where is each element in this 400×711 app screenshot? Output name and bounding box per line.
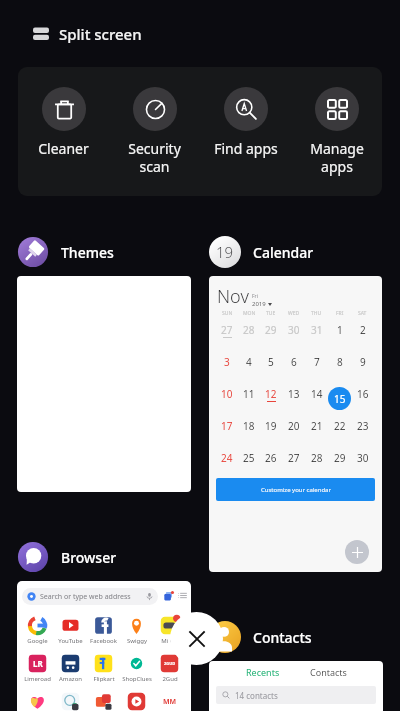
button[interactable]: LR <box>21 654 54 683</box>
button[interactable]: 15 <box>328 387 351 410</box>
button[interactable]: 28 <box>311 451 323 465</box>
button[interactable]: Contacts <box>302 666 355 678</box>
button[interactable]: Security scan <box>109 87 200 176</box>
button[interactable]: Amazon <box>54 654 87 683</box>
staticText: Flipkart <box>93 675 115 683</box>
staticText: Recents <box>246 666 280 678</box>
button[interactable]: Add event <box>345 540 369 564</box>
button[interactable]: Customize your calendar <box>216 478 375 501</box>
button[interactable]: 30 <box>288 323 300 337</box>
staticText: Search or type web address <box>40 592 131 602</box>
button[interactable]: Helo <box>87 692 120 711</box>
button[interactable]: Mi Ga <box>153 616 186 645</box>
button[interactable]: Find apps <box>200 87 291 158</box>
button[interactable]: Recents <box>238 666 288 678</box>
button[interactable]: 30 <box>357 451 369 465</box>
button[interactable]: 14 contacts <box>216 686 376 704</box>
staticText: Manage apps <box>310 139 364 176</box>
button[interactable]: 2GUD <box>153 654 186 683</box>
staticText: Security scan <box>128 139 181 176</box>
button[interactable]: 3 <box>224 355 230 369</box>
button[interactable]: 1 <box>337 323 343 337</box>
staticText: SAT <box>358 310 367 317</box>
button[interactable]: Split screen <box>33 24 142 44</box>
button[interactable]: Manage apps <box>291 87 382 176</box>
staticText: Amazon <box>59 675 82 683</box>
button[interactable]: Search or type web address <box>22 588 158 605</box>
button[interactable]: Likee <box>21 692 54 711</box>
button[interactable]: Google <box>21 616 54 645</box>
button[interactable]: 31 <box>311 323 323 337</box>
button[interactable]: 20 <box>288 419 300 433</box>
button[interactable]: 5 <box>268 355 274 369</box>
other: Voice search <box>145 592 154 601</box>
staticText: Contacts <box>253 628 312 647</box>
button[interactable]: 24 <box>221 451 233 465</box>
staticText: FRI <box>336 310 344 317</box>
staticText: SUN <box>222 310 233 317</box>
button[interactable]: Menu <box>178 591 187 602</box>
staticText: WED <box>288 310 300 317</box>
staticText: YouTube <box>58 637 83 645</box>
button[interactable]: 19 <box>265 419 277 433</box>
staticText: MM <box>163 697 177 707</box>
staticText: 19 <box>216 242 234 262</box>
staticText: Find apps <box>214 139 278 158</box>
button[interactable]: 12 <box>265 387 277 401</box>
button[interactable]: Facebook <box>87 616 120 645</box>
button[interactable]: ShopClues <box>120 654 153 683</box>
button[interactable]: 4 <box>246 355 252 369</box>
staticText: Split screen <box>59 24 142 44</box>
button[interactable]: Themes <box>17 236 114 268</box>
button[interactable]: Close <box>170 612 223 665</box>
button[interactable]: 13 <box>288 387 300 401</box>
staticText: LR <box>33 658 43 669</box>
staticText: 2019 <box>252 300 266 308</box>
button[interactable]: Contacts <box>209 621 312 653</box>
button[interactable]: 8 <box>337 355 343 369</box>
button[interactable]: 10 <box>221 387 233 401</box>
button[interactable]: MM <box>153 692 186 711</box>
button[interactable]: 22 <box>334 419 346 433</box>
button[interactable]: 19 <box>209 236 314 268</box>
button[interactable]: 28 <box>243 323 255 337</box>
staticText: Contacts <box>310 666 347 678</box>
button[interactable]: 17 <box>221 419 233 433</box>
staticText: Google <box>27 637 48 645</box>
staticText: Swiggy <box>127 637 147 645</box>
button[interactable]: 11 <box>243 387 255 401</box>
button[interactable]: Tabs <box>163 591 174 602</box>
button[interactable]: 26 <box>265 451 277 465</box>
button[interactable]: 9 <box>360 355 366 369</box>
staticText: TUE <box>266 310 276 317</box>
staticText: 2Gud <box>162 675 178 683</box>
button[interactable]: 29 <box>334 451 346 465</box>
button[interactable]: 27 <box>221 323 233 337</box>
button[interactable]: 14 <box>311 387 323 401</box>
button[interactable]: 2 <box>360 323 366 337</box>
button[interactable]: 16 <box>357 387 369 401</box>
button[interactable] <box>17 276 191 492</box>
button[interactable]: 7 <box>314 355 320 369</box>
staticText: 15 <box>334 392 346 406</box>
button[interactable]: Flipkart <box>87 654 120 683</box>
button[interactable]: 18 <box>243 419 255 433</box>
button[interactable]: 25 <box>243 451 255 465</box>
staticText: Mi Ga <box>161 637 178 645</box>
button[interactable]: 29 <box>265 323 277 337</box>
button[interactable]: Swiggy <box>120 616 153 645</box>
staticText: 14 contacts <box>235 690 278 701</box>
button[interactable]: 27 <box>288 451 300 465</box>
button[interactable]: Bigo <box>54 692 87 711</box>
staticText: MON <box>243 310 256 317</box>
staticText: 2GUD <box>164 661 176 666</box>
button[interactable]: Vigo <box>120 692 153 711</box>
staticText: Limeroad <box>24 675 51 683</box>
button[interactable]: YouTube <box>54 616 87 645</box>
button[interactable]: Browser <box>17 541 117 573</box>
button[interactable]: Cleaner <box>18 87 109 158</box>
button[interactable]: 23 <box>357 419 369 433</box>
staticText: THU <box>311 310 322 317</box>
button[interactable]: 21 <box>311 419 323 433</box>
button[interactable]: 6 <box>291 355 297 369</box>
